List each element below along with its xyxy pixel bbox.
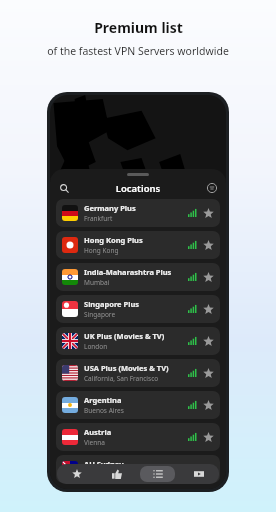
button[interactable]: Germany Plus	[56, 199, 220, 227]
staticText: India-Maharashtra Plus	[84, 267, 172, 277]
staticText: Singapore	[84, 310, 116, 319]
staticText: Mumbai	[84, 278, 110, 287]
staticText: of the fastest VPN Servers worldwide	[47, 44, 229, 58]
button[interactable]: Argentina	[56, 391, 220, 419]
staticText: UK Plus (Movies & TV)	[84, 331, 165, 341]
staticText: Hong Kong	[84, 246, 119, 255]
staticText: Hong Kong Plus	[84, 235, 143, 245]
staticText: AU Sydney	[84, 459, 124, 469]
staticText: Argentina	[84, 395, 122, 405]
button[interactable]: All locations	[140, 466, 175, 482]
button[interactable]: Recommended	[100, 466, 134, 482]
staticText: Germany Plus	[84, 203, 136, 213]
button[interactable]: UK Plus (Movies & TV)	[56, 327, 220, 355]
staticText: Austria	[84, 427, 112, 437]
button[interactable]: India-Maharashtra Plus	[56, 263, 220, 291]
button[interactable]: Hong Kong Plus	[56, 231, 220, 259]
button[interactable]: USA Plus (Movies & TV)	[56, 359, 220, 387]
staticText: Buenos Aires	[84, 406, 124, 415]
button[interactable]: Singapore Plus	[56, 295, 220, 323]
button[interactable]: Favorites	[60, 466, 94, 482]
staticText: California, San Francisco	[84, 374, 159, 383]
staticText: USA Plus (Movies & TV)	[84, 363, 169, 373]
staticText: Vienna	[84, 438, 105, 447]
staticText: Frankfurt	[84, 214, 113, 223]
staticText: Locations	[71, 182, 205, 195]
button[interactable]: Streaming	[181, 466, 216, 482]
staticText: London	[84, 342, 108, 351]
staticText: Premium list	[94, 18, 183, 37]
button[interactable]: Search	[57, 181, 71, 195]
button[interactable]: AU Sydney	[56, 455, 220, 483]
button[interactable]: Filter	[205, 181, 219, 195]
button[interactable]: Austria	[56, 423, 220, 451]
staticText: Singapore Plus	[84, 299, 140, 309]
